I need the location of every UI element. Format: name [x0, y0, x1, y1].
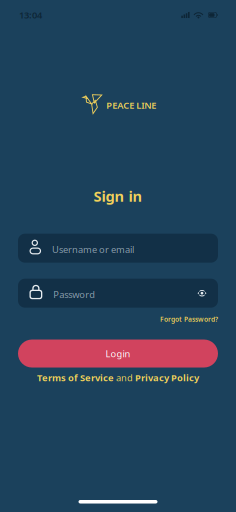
- staticText: Terms of Service: [37, 371, 114, 384]
- button[interactable]: Forgot Password?: [160, 315, 218, 324]
- button[interactable]: Login: [18, 339, 218, 367]
- staticText: Username or email: [52, 243, 134, 256]
- staticText: Sign in: [93, 186, 142, 206]
- staticText: PEACE LINE: [106, 99, 156, 111]
- staticText: Forgot Password?: [160, 315, 218, 324]
- button[interactable]: Password: [18, 279, 218, 308]
- button[interactable]: Privacy Policy: [135, 371, 199, 384]
- staticText: Login: [105, 347, 130, 360]
- staticText: Password: [53, 288, 95, 301]
- staticText: and: [114, 371, 135, 384]
- button[interactable]: Terms of Service: [37, 371, 114, 384]
- staticText: 13:04: [19, 9, 42, 21]
- button[interactable]: Username or email: [18, 234, 218, 263]
- staticText: Privacy Policy: [135, 371, 199, 384]
